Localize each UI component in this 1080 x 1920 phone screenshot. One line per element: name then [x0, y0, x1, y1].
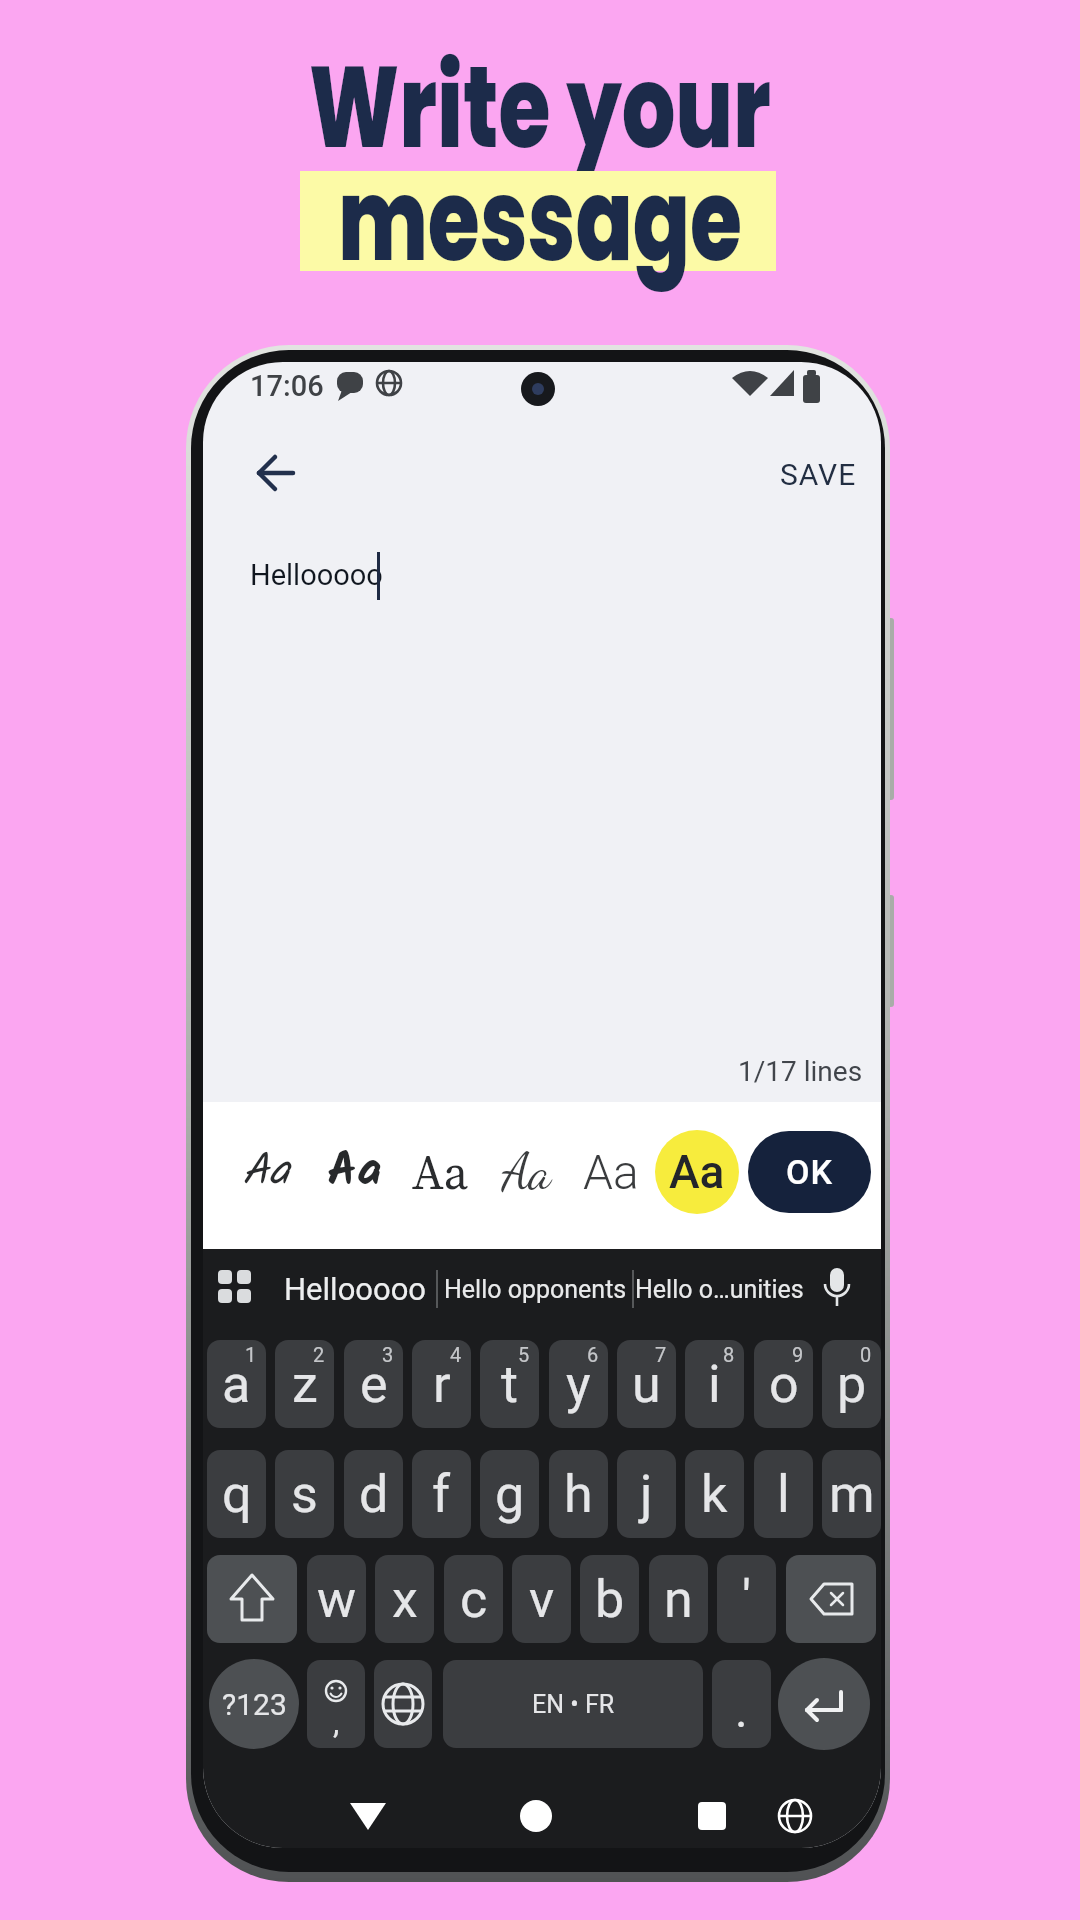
button[interactable]: ': [717, 1555, 776, 1643]
button[interactable]: m: [822, 1450, 881, 1538]
button[interactable]: OK: [748, 1131, 871, 1213]
staticText: message: [338, 139, 742, 300]
staticText: g: [495, 1464, 525, 1525]
staticText: 1: [245, 1343, 257, 1366]
button[interactable]: EN • FR: [443, 1660, 703, 1748]
button[interactable]: SAVE: [697, 444, 857, 504]
staticText: h: [564, 1464, 593, 1525]
staticText: f: [432, 1464, 451, 1525]
button[interactable]: q: [207, 1450, 266, 1538]
button[interactable]: s: [275, 1450, 334, 1538]
button[interactable]: u: [617, 1340, 676, 1428]
button[interactable]: Aa: [221, 1122, 311, 1222]
staticText: b: [595, 1569, 625, 1630]
staticText: u: [632, 1354, 661, 1415]
button[interactable]: Aa: [309, 1122, 399, 1222]
staticText: r: [433, 1354, 451, 1415]
button[interactable]: Aa: [481, 1122, 571, 1222]
staticText: 6: [587, 1343, 599, 1366]
staticText: Aa: [412, 1139, 469, 1205]
button[interactable]: n: [649, 1555, 708, 1643]
staticText: ': [742, 1569, 752, 1630]
staticText: l: [777, 1464, 790, 1525]
button[interactable]: l: [754, 1450, 813, 1538]
button[interactable]: Aa: [655, 1130, 739, 1214]
button[interactable]: b: [580, 1555, 639, 1643]
button[interactable]: k: [685, 1450, 744, 1538]
staticText: t: [501, 1354, 519, 1415]
button[interactable]: [207, 1555, 297, 1643]
button[interactable]: [338, 1786, 398, 1846]
staticText: 0: [860, 1343, 872, 1366]
button[interactable]: d: [344, 1450, 403, 1538]
staticText: w: [317, 1569, 357, 1630]
staticText: 4: [450, 1343, 462, 1366]
button[interactable]: z: [275, 1340, 334, 1428]
button[interactable]: r: [412, 1340, 471, 1428]
button[interactable]: a: [207, 1340, 266, 1428]
staticText: Hello opponents: [444, 1275, 627, 1304]
button[interactable]: i: [685, 1340, 744, 1428]
button[interactable]: Hello opponents: [420, 1259, 650, 1319]
button[interactable]: p: [822, 1340, 881, 1428]
button[interactable]: [712, 1660, 771, 1748]
button[interactable]: [682, 1786, 742, 1846]
staticText: Aa: [242, 1137, 290, 1207]
button[interactable]: [786, 1555, 876, 1643]
staticText: 5: [518, 1343, 530, 1366]
staticText: y: [566, 1354, 591, 1415]
button[interactable]: h: [549, 1450, 608, 1538]
staticText: Hellooooo: [284, 1271, 427, 1307]
staticText: ,: [333, 1703, 340, 1741]
staticText: Aa: [327, 1134, 382, 1211]
staticText: o: [769, 1354, 799, 1415]
staticText: m: [829, 1464, 875, 1525]
staticText: 9: [792, 1343, 804, 1366]
staticText: Aa: [502, 1142, 551, 1202]
button[interactable]: Hello o…unities: [604, 1259, 834, 1319]
staticText: Aa: [669, 1145, 725, 1199]
staticText: z: [292, 1354, 318, 1415]
button[interactable]: Hellooooo: [205, 1259, 505, 1319]
button[interactable]: t: [480, 1340, 539, 1428]
staticText: v: [529, 1569, 555, 1630]
button[interactable]: [778, 1658, 870, 1750]
button[interactable]: Aa: [395, 1122, 485, 1222]
staticText: SAVE: [780, 457, 857, 492]
button[interactable]: f: [412, 1450, 471, 1538]
button[interactable]: e: [344, 1340, 403, 1428]
button[interactable]: o: [754, 1340, 813, 1428]
staticText: ?123: [222, 1687, 287, 1722]
button[interactable]: g: [480, 1450, 539, 1538]
button[interactable]: c: [444, 1555, 503, 1643]
staticText: p: [837, 1354, 867, 1415]
button[interactable]: Aa: [566, 1122, 656, 1222]
button[interactable]: [307, 1660, 365, 1748]
staticText: Aa: [583, 1144, 639, 1200]
button[interactable]: j: [617, 1450, 676, 1538]
button[interactable]: y: [549, 1340, 608, 1428]
button[interactable]: [506, 1786, 566, 1846]
button[interactable]: v: [512, 1555, 571, 1643]
staticText: 7: [655, 1343, 667, 1366]
staticText: Hello o…unities: [635, 1275, 804, 1304]
button[interactable]: x: [375, 1555, 434, 1643]
button[interactable]: w: [307, 1555, 366, 1643]
button[interactable]: [374, 1660, 432, 1748]
staticText: j: [640, 1464, 653, 1525]
staticText: 8: [723, 1343, 735, 1366]
staticText: x: [392, 1569, 418, 1630]
staticText: s: [291, 1464, 318, 1525]
staticText: Write your: [309, 26, 771, 187]
staticText: EN • FR: [532, 1690, 615, 1719]
staticText: 2: [313, 1343, 325, 1366]
button[interactable]: ?123: [209, 1659, 299, 1749]
staticText: Hellooooo: [250, 558, 383, 592]
staticText: 1/17 lines: [738, 1055, 863, 1088]
staticText: 17:06: [250, 369, 324, 403]
staticText: k: [701, 1464, 728, 1525]
staticText: c: [460, 1569, 488, 1630]
button[interactable]: [243, 442, 307, 506]
button[interactable]: [765, 1786, 825, 1846]
staticText: .: [735, 1682, 748, 1738]
